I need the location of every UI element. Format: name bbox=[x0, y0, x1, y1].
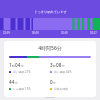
button[interactable]: 44 bbox=[9, 79, 50, 91]
staticText: 分 bbox=[15, 81, 18, 85]
staticText: 00:00 bbox=[32, 31, 39, 35]
staticText: ぐっすり眠れています bbox=[34, 10, 67, 14]
staticText: 3 bbox=[50, 62, 53, 68]
staticText: 02:00 bbox=[61, 31, 68, 35]
staticText: レム睡眠 15% bbox=[13, 87, 31, 91]
staticText: 分 bbox=[53, 81, 56, 85]
button[interactable]: 3 bbox=[50, 62, 91, 74]
staticText: 分 bbox=[62, 64, 65, 68]
staticText: 44 bbox=[9, 79, 15, 85]
staticText: 4時間56分 bbox=[38, 45, 62, 52]
button[interactable]: 1 bbox=[9, 62, 50, 74]
staticText: 08 bbox=[56, 62, 62, 68]
staticText: 時 bbox=[12, 64, 15, 68]
staticText: 1 bbox=[9, 62, 12, 68]
staticText: 22:09 bbox=[3, 31, 10, 35]
other: Sleep stage chart bbox=[0, 18, 100, 30]
staticText: 目覚め回数 bbox=[54, 87, 69, 91]
button[interactable]: 4時間56分 bbox=[4, 41, 96, 97]
staticText: 時 bbox=[53, 64, 56, 68]
staticText: 03:27 bbox=[90, 31, 97, 35]
staticText: 浅い睡眠 64% bbox=[54, 70, 72, 74]
staticText: 0 bbox=[50, 79, 53, 85]
button[interactable]: 0 bbox=[50, 79, 91, 91]
staticText: 深い睡眠 21% bbox=[13, 70, 31, 74]
staticText: 04 bbox=[15, 62, 21, 68]
staticText: 分 bbox=[21, 64, 24, 68]
